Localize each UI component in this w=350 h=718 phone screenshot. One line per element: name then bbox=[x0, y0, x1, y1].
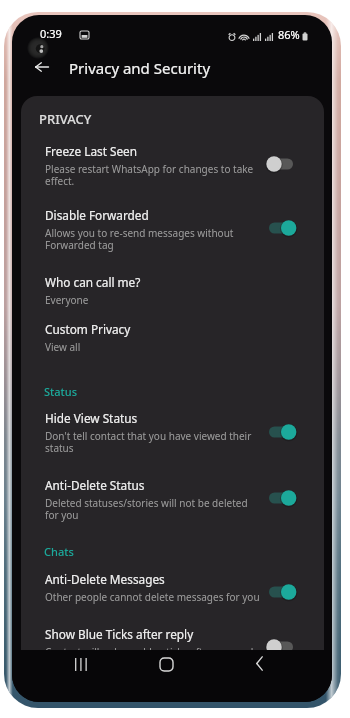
staticText: Chats bbox=[44, 544, 74, 559]
button[interactable]: Back bbox=[247, 651, 271, 675]
staticText: Please restart WhatsApp for changes to t… bbox=[45, 162, 254, 188]
staticText: Don't tell contact that you have viewed … bbox=[45, 429, 252, 455]
staticText: Anti-Delete Status bbox=[45, 477, 145, 493]
staticText: PRIVACY bbox=[39, 110, 92, 128]
staticText: Anti-Delete Messages bbox=[45, 571, 165, 587]
button[interactable]: Freeze Last Seen bbox=[21, 134, 324, 188]
button[interactable]: Off bbox=[266, 636, 300, 650]
staticText: 0:39 bbox=[40, 26, 62, 41]
button[interactable]: Anti-Delete Messages bbox=[21, 562, 324, 604]
button[interactable]: Custom Privacy bbox=[21, 312, 324, 354]
staticText: Who can call me? bbox=[45, 274, 141, 290]
staticText: Status bbox=[44, 384, 78, 399]
button[interactable]: On bbox=[266, 487, 300, 509]
staticText: Contact will only see blue ticks after y… bbox=[45, 645, 259, 650]
button[interactable]: Hide View Status bbox=[21, 401, 324, 455]
button[interactable]: On bbox=[266, 421, 300, 443]
button[interactable]: Home bbox=[154, 652, 178, 676]
button[interactable]: Who can call me? bbox=[21, 265, 324, 307]
staticText: Custom Privacy bbox=[45, 321, 131, 337]
staticText: Disable Forwarded bbox=[45, 207, 149, 223]
staticText: 86% bbox=[278, 27, 300, 42]
button[interactable]: On bbox=[266, 217, 300, 239]
staticText: Everyone bbox=[45, 293, 89, 307]
button[interactable]: Show Blue Ticks after reply bbox=[21, 617, 324, 650]
button[interactable]: Disable Forwarded bbox=[21, 198, 324, 252]
staticText: Allows you to re-send messages without F… bbox=[45, 226, 234, 252]
button[interactable]: Recent apps bbox=[69, 652, 93, 676]
staticText: Deleted statuses/stories will not be del… bbox=[45, 496, 248, 522]
staticText: Show Blue Ticks after reply bbox=[45, 626, 194, 642]
staticText: Hide View Status bbox=[45, 410, 138, 426]
button[interactable]: On bbox=[266, 581, 300, 603]
button[interactable]: Off bbox=[266, 153, 300, 175]
staticText: View all bbox=[45, 340, 81, 354]
button[interactable]: Anti-Delete Status bbox=[21, 468, 324, 522]
button[interactable]: Back bbox=[28, 53, 56, 81]
staticText: Other people cannot delete messages for … bbox=[45, 590, 260, 604]
staticText: Privacy and Security bbox=[69, 58, 211, 78]
staticText: Freeze Last Seen bbox=[45, 143, 138, 159]
